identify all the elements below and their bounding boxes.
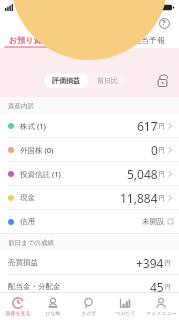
button[interactable]: 外国株 (0) [0,138,179,161]
button[interactable]: ヘルプ [156,15,172,31]
staticText: 株式 (1) [20,121,46,131]
staticText: +394 [136,255,164,271]
staticText: 円 [159,194,165,202]
button[interactable]: 売買損益 [0,251,179,274]
staticText: ひな株 [45,310,61,316]
button[interactable]: ひな株 [35,293,71,320]
staticText: マイメニュー [146,310,177,316]
staticText: ? [162,18,166,28]
button[interactable]: マイメニュー [143,293,179,320]
button[interactable]: 現金 [0,186,179,209]
staticText: 617 [137,118,158,134]
staticText: 5,048 [127,166,158,182]
staticText: 11,884 [120,190,158,206]
button[interactable]: さがす [71,293,107,320]
staticText: 45 [150,279,164,295]
staticText: 資産内訳 [8,102,34,110]
staticText: 資産を見る [5,310,31,316]
button[interactable]: お預り資産 [0,32,59,48]
button[interactable]: 投資信託 (1) [0,162,179,185]
staticText: お預り資産 [9,35,50,45]
staticText: 現金 [20,193,35,202]
staticText: 前日比 [97,76,118,85]
button[interactable]: つみたて [107,293,143,320]
button[interactable]: 信用 [0,210,179,233]
staticText: 投資信託 (1) [20,169,61,179]
staticText: 円 [165,259,171,267]
button[interactable]: 配当予報 [119,32,179,48]
staticText: つみたて [115,310,136,316]
staticText: 売買損益 [8,258,38,267]
staticText: 外国株 (0) [20,145,54,155]
staticText: 信用 [20,217,35,226]
staticText: 円 [165,283,171,291]
staticText: 前日までの成績 [8,239,54,247]
staticText: 評価損益 [52,76,80,85]
staticText: 配当予報 [133,35,165,45]
staticText: さがす [81,310,97,316]
staticText: Y!mobile [16,3,41,11]
button[interactable]: 金額表示を隠す [153,71,171,89]
button[interactable]: 資産を見る [0,293,35,320]
button[interactable]: 配当金・分配金 [0,275,179,298]
staticText: 円 [159,146,165,154]
staticText: 配当金・分配金 [8,282,61,291]
staticText: 未開設 [142,217,165,226]
staticText: 円 [159,170,165,178]
button[interactable]: 株式 (1) [0,114,179,137]
staticText: 円 [159,122,165,130]
button[interactable]: 評価損益 [44,73,127,88]
staticText: 0 [151,142,158,158]
